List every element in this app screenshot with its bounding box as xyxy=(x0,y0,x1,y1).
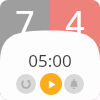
staticText: 7 xyxy=(15,0,35,44)
button[interactable] xyxy=(50,0,100,100)
button[interactable]: Start xyxy=(40,73,62,95)
staticText: 05:00 xyxy=(28,49,72,71)
button[interactable]: Reset xyxy=(16,74,36,94)
button[interactable]: Alarm xyxy=(64,74,84,94)
button[interactable] xyxy=(0,0,50,100)
staticText: 4 xyxy=(65,0,85,44)
